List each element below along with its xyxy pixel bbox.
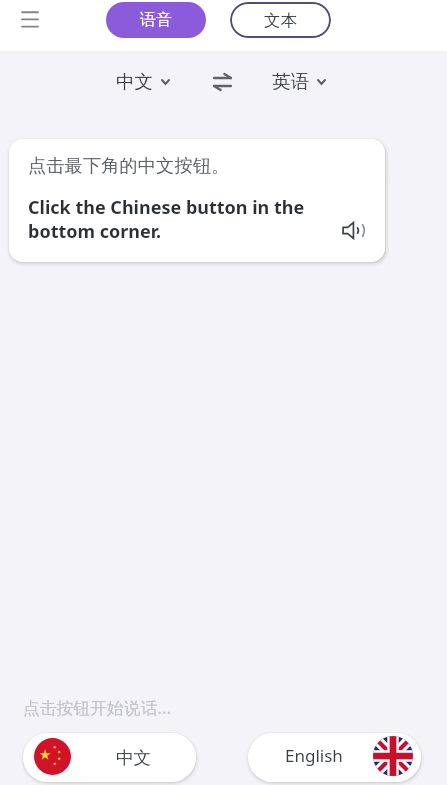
staticText: Click the Chinese button in the bottom c… [28,195,320,243]
button[interactable]: 中文 [23,733,196,782]
staticText: 点击按钮开始说话... [23,696,171,719]
button[interactable]: 文本 [230,2,331,38]
button[interactable]: 中文 [108,66,178,96]
button[interactable]: Listen [337,214,369,246]
staticText: 中文 [116,70,153,93]
button[interactable]: Menu [12,1,47,36]
button[interactable]: English [248,733,421,782]
button[interactable]: 点击最下角的中文按钮。 [9,139,385,262]
button[interactable]: Swap languages [205,65,239,99]
button[interactable]: 语音 [106,2,206,38]
staticText: 英语 [272,70,309,93]
staticText: 文本 [264,10,297,31]
staticText: 语音 [140,10,172,30]
staticText: English [285,744,343,767]
button[interactable]: 英语 [264,66,334,96]
staticText: 中文 [116,747,151,769]
staticText: 点击最下角的中文按钮。 [28,154,230,177]
